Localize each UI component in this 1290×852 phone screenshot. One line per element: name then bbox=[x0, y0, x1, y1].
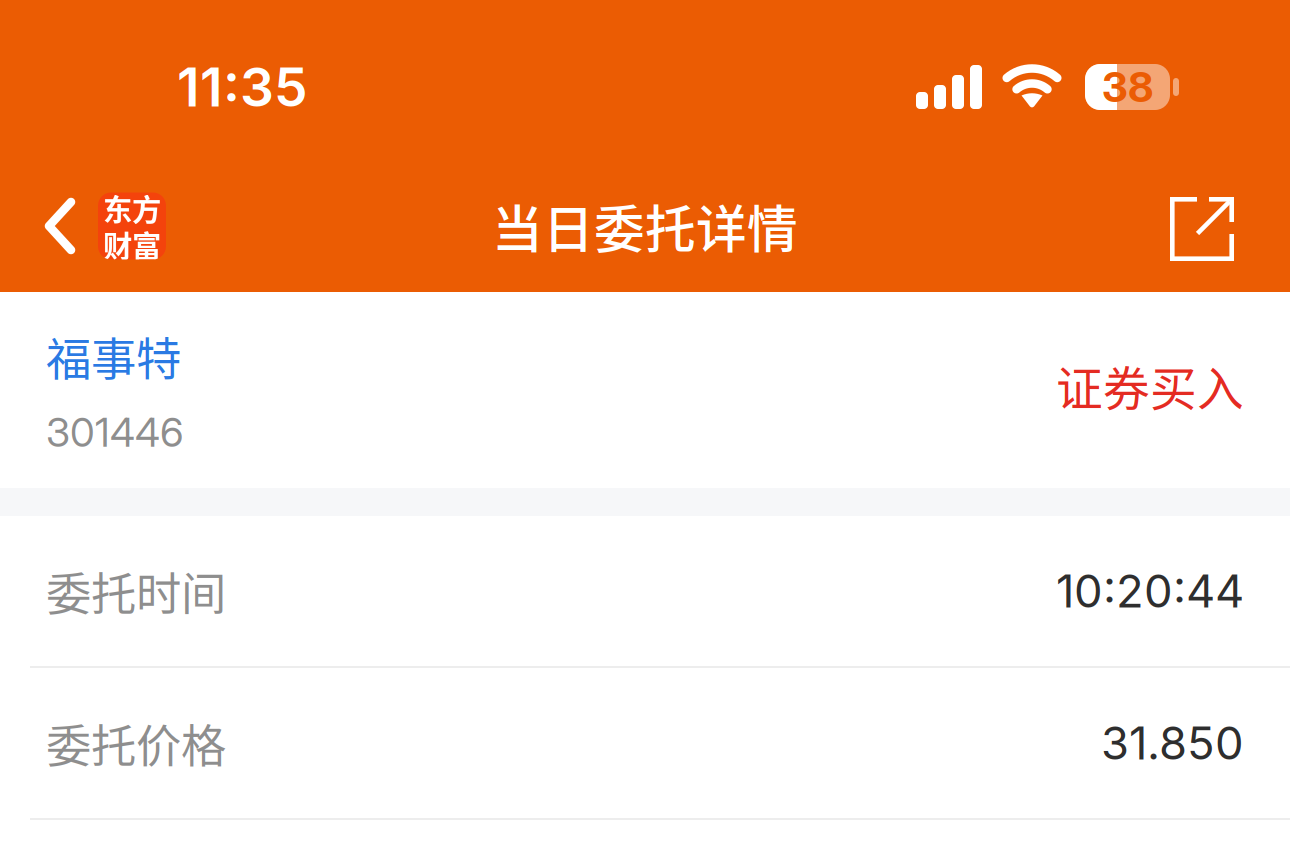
staticText: 10:20:44 bbox=[1056, 564, 1244, 618]
staticText: 证券买入 bbox=[1056, 352, 1244, 419]
staticText: 福事特 bbox=[46, 323, 181, 389]
staticText: 东方 bbox=[103, 186, 161, 229]
button[interactable]: 福事特 bbox=[0, 292, 1290, 488]
staticText: 38 bbox=[1102, 62, 1153, 112]
staticText: 委托价格 bbox=[46, 710, 226, 776]
staticText: 当日委托详情 bbox=[492, 189, 798, 263]
button[interactable]: Back bbox=[0, 160, 184, 292]
button[interactable]: Share bbox=[1130, 160, 1290, 292]
staticText: 委托时间 bbox=[46, 558, 226, 624]
staticText: 301446 bbox=[46, 408, 184, 456]
staticText: 财富 bbox=[103, 223, 161, 265]
staticText: 31.850 bbox=[1101, 716, 1244, 770]
staticText: 11:35 bbox=[177, 55, 308, 119]
